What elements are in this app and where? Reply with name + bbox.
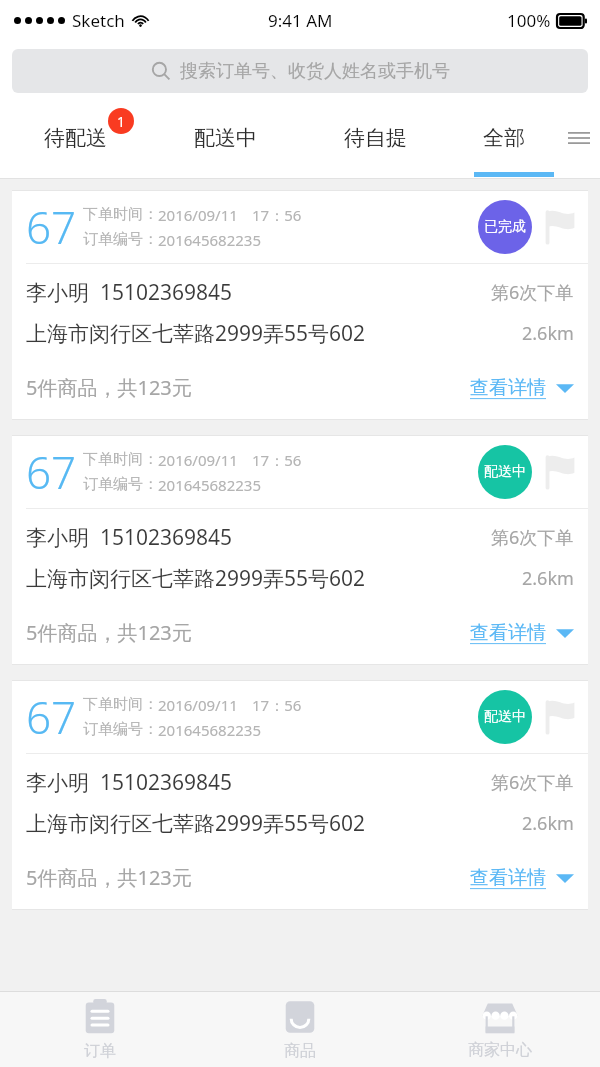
staticText: 待自提 — [344, 125, 407, 151]
button[interactable]: 商家中心 — [400, 992, 600, 1067]
staticText: 9:41 AM — [268, 9, 333, 32]
staticText: 17：56 — [252, 695, 302, 715]
staticText: 2.6km — [522, 811, 574, 836]
staticText: 待配送 — [44, 125, 107, 151]
staticText: 5件商品，共123元 — [26, 864, 192, 891]
staticText: 15102369845 — [100, 523, 233, 552]
staticText: 下单时间： — [83, 695, 158, 714]
staticText: 配送中 — [194, 125, 257, 151]
staticText: 查看详情 — [470, 866, 546, 890]
button[interactable]: 查看详情 — [470, 866, 574, 890]
staticText: 搜索订单号、收货人姓名或手机号 — [180, 60, 450, 83]
button[interactable]: 搜索订单号、收货人姓名或手机号 — [12, 49, 588, 93]
button[interactable]: 查看详情 — [470, 376, 574, 400]
staticText: 李小明 — [26, 770, 89, 796]
staticText: 商品 — [284, 1041, 316, 1061]
button[interactable]: 67 — [12, 435, 588, 665]
staticText: 下单时间： — [83, 205, 158, 224]
button[interactable]: Menu — [558, 102, 600, 174]
staticText: 李小明 — [26, 280, 89, 306]
staticText: 15102369845 — [100, 768, 233, 797]
staticText: 100% — [507, 9, 551, 32]
staticText: 17：56 — [252, 205, 302, 225]
staticText: 查看详情 — [470, 376, 546, 400]
button[interactable]: 待自提 — [300, 102, 450, 174]
button[interactable]: 67 — [12, 680, 588, 910]
staticText: 2.6km — [522, 321, 574, 346]
staticText: 商家中心 — [468, 1040, 532, 1060]
staticText: 查看详情 — [470, 621, 546, 645]
staticText: 第6次下单 — [491, 525, 574, 550]
staticText: 67 — [26, 442, 77, 502]
button[interactable]: 订单 — [0, 992, 200, 1067]
staticText: 上海市闵行区七莘路2999弄55号602 — [26, 809, 366, 838]
staticText: 2016/09/11 — [158, 695, 238, 715]
staticText: 第6次下单 — [491, 770, 574, 795]
button[interactable]: 待配送 — [0, 102, 150, 174]
staticText: 上海市闵行区七莘路2999弄55号602 — [26, 319, 366, 348]
staticText: 已完成 — [484, 218, 526, 236]
staticText: 李小明 — [26, 525, 89, 551]
staticText: 201645682235 — [158, 230, 261, 250]
staticText: 201645682235 — [158, 720, 261, 740]
staticText: 1 — [117, 112, 126, 131]
staticText: 订单 — [84, 1041, 116, 1061]
staticText: Sketch — [72, 9, 125, 32]
button[interactable]: 67 — [12, 190, 588, 420]
staticText: 下单时间： — [83, 450, 158, 469]
staticText: 2016/09/11 — [158, 205, 238, 225]
staticText: 67 — [26, 687, 77, 747]
staticText: 第6次下单 — [491, 280, 574, 305]
staticText: 配送中 — [484, 463, 526, 481]
button[interactable]: 商品 — [200, 992, 400, 1067]
staticText: 201645682235 — [158, 475, 261, 495]
staticText: 67 — [26, 197, 77, 257]
staticText: 订单编号： — [83, 475, 158, 494]
staticText: 17：56 — [252, 450, 302, 470]
staticText: 15102369845 — [100, 278, 233, 307]
staticText: 2.6km — [522, 566, 574, 591]
staticText: 上海市闵行区七莘路2999弄55号602 — [26, 564, 366, 593]
staticText: 全部 — [483, 125, 525, 151]
button[interactable]: 查看详情 — [470, 621, 574, 645]
button[interactable]: 配送中 — [150, 102, 300, 174]
staticText: 订单编号： — [83, 720, 158, 739]
staticText: 5件商品，共123元 — [26, 619, 192, 646]
staticText: 配送中 — [484, 708, 526, 726]
button[interactable]: 全部 — [450, 102, 558, 174]
staticText: 2016/09/11 — [158, 450, 238, 470]
staticText: 订单编号： — [83, 230, 158, 249]
staticText: 5件商品，共123元 — [26, 374, 192, 401]
